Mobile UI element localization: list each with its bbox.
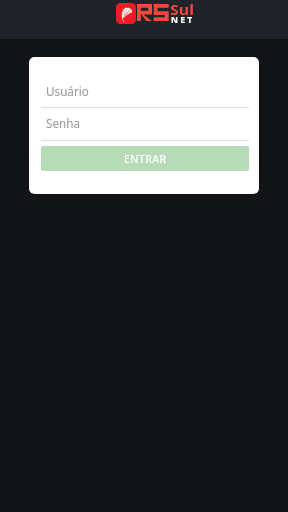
staticText: NET [171, 14, 195, 26]
button[interactable]: ENTRAR [41, 146, 249, 171]
staticText: Usuário [46, 83, 89, 99]
other: RSSul NET [0, 0, 288, 39]
staticText: ENTRAR [124, 152, 167, 166]
staticText: Sul [170, 1, 195, 19]
button[interactable]: Usuário [41, 78, 249, 108]
button[interactable]: Senha [41, 111, 249, 141]
staticText: Senha [46, 115, 81, 131]
